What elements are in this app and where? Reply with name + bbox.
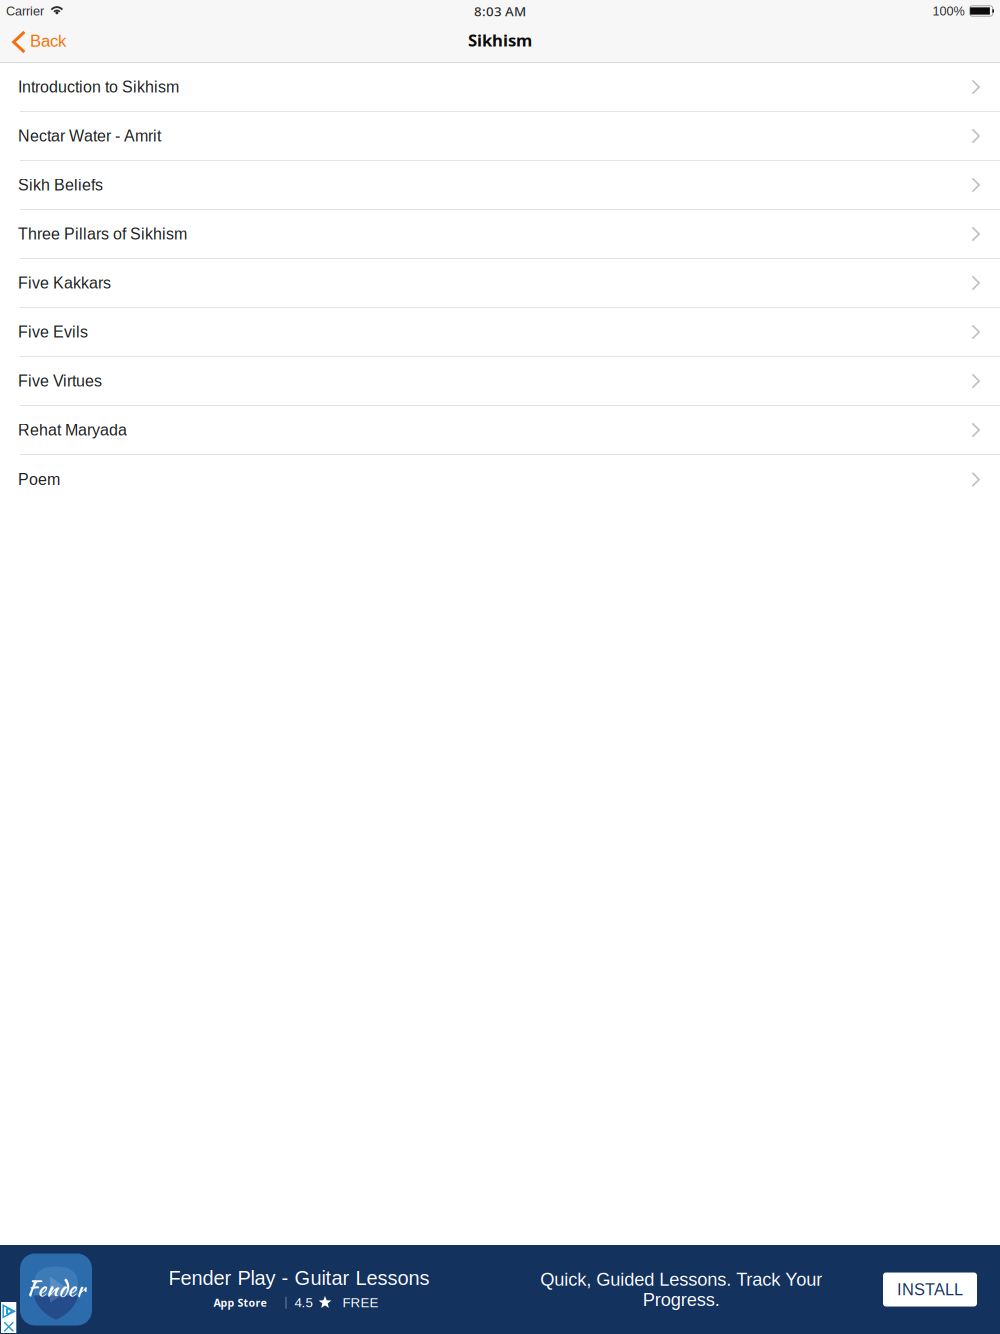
- button[interactable]: INSTALL: [883, 1272, 977, 1306]
- staticText: Five Virtues: [18, 372, 102, 390]
- staticText: Fender: [26, 1273, 85, 1304]
- button[interactable]: Five Evils: [0, 308, 1000, 357]
- staticText: 100%: [932, 4, 964, 18]
- button[interactable]: Back: [0, 22, 76, 62]
- staticText: Sikh Beliefs: [18, 176, 103, 194]
- button[interactable]: Introduction to Sikhism: [0, 63, 1000, 112]
- staticText: Five Evils: [18, 323, 88, 341]
- staticText: Introduction to Sikhism: [18, 78, 179, 96]
- staticText: Carrier: [6, 4, 44, 18]
- staticText: Nectar Water - Amrit: [18, 127, 161, 145]
- staticText: Three Pillars of Sikhism: [18, 225, 187, 243]
- staticText: Five Kakkars: [18, 274, 111, 292]
- staticText: FREE: [342, 1295, 378, 1310]
- staticText: 4.5: [294, 1295, 312, 1310]
- button[interactable]: Five Kakkars: [0, 259, 1000, 308]
- button[interactable]: Rehat Maryada: [0, 406, 1000, 455]
- staticText: App Store: [213, 1295, 266, 1310]
- button[interactable]: Five Virtues: [0, 357, 1000, 406]
- staticText: Fender Play - Guitar Lessons: [168, 1267, 429, 1289]
- staticText: Poem: [18, 471, 60, 488]
- staticText: INSTALL: [897, 1280, 963, 1299]
- button[interactable]: Poem: [0, 455, 1000, 504]
- staticText: 8:03 AM: [474, 2, 526, 20]
- button[interactable]: Ad choices: [1, 1302, 16, 1333]
- button[interactable]: Sikh Beliefs: [0, 161, 1000, 210]
- staticText: Rehat Maryada: [18, 421, 127, 439]
- button[interactable]: Three Pillars of Sikhism: [0, 210, 1000, 259]
- button[interactable]: Nectar Water - Amrit: [0, 112, 1000, 161]
- staticText: Sikhism: [468, 29, 532, 51]
- staticText: Back: [30, 32, 66, 50]
- staticText: Quick, Guided Lessons. Track Your Progre…: [540, 1269, 822, 1310]
